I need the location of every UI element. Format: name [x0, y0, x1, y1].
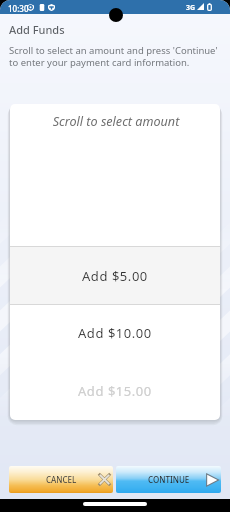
staticText: 3G	[186, 3, 196, 13]
button[interactable]: CANCEL	[9, 466, 113, 493]
other: Cancel	[99, 474, 110, 485]
button[interactable]: CONTINUE	[116, 466, 221, 493]
staticText: Add $5.00	[82, 267, 148, 285]
staticText: CANCEL	[46, 474, 77, 485]
staticText: Add $15.00	[78, 382, 152, 400]
staticText: Scroll to select amount	[11, 113, 220, 130]
staticText: Add $10.00	[78, 324, 152, 342]
staticText: CONTINUE	[148, 474, 190, 485]
staticText: 10:30	[8, 3, 29, 14]
button[interactable]: Add $5.00	[10, 247, 220, 305]
staticText: Scroll to select an amount and press 'Co…	[9, 44, 218, 69]
button[interactable]: Add $15.00	[10, 362, 220, 420]
button[interactable]: Add $10.00	[10, 304, 220, 362]
other: Continue	[206, 474, 218, 486]
staticText: Add Funds	[9, 22, 65, 37]
